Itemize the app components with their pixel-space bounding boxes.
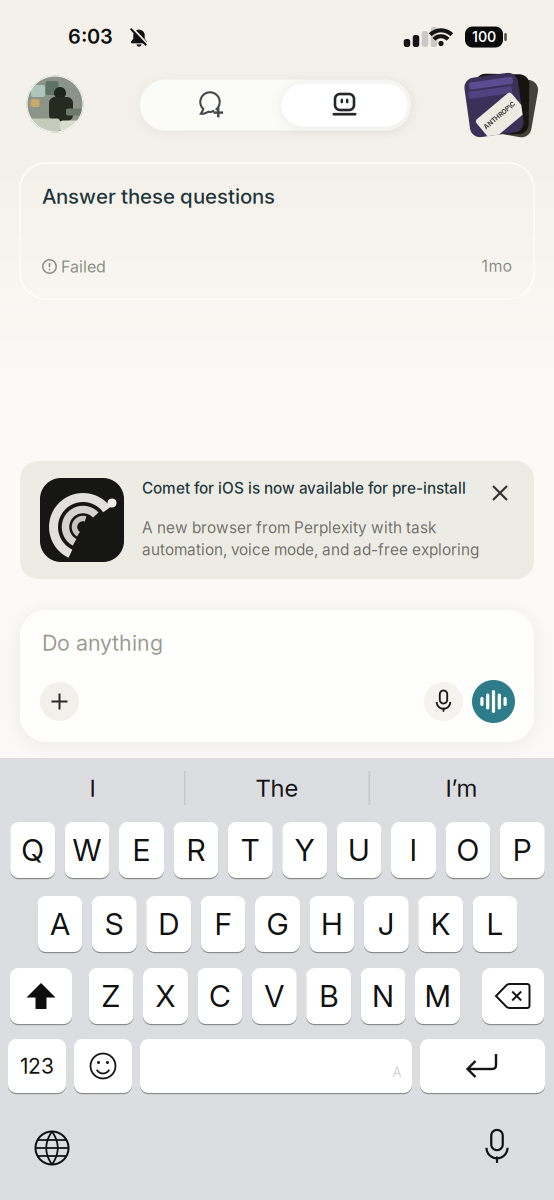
staticText: X xyxy=(155,978,175,1014)
button[interactable]: Answer these questions xyxy=(20,163,534,299)
staticText: O xyxy=(456,832,479,868)
staticText: S xyxy=(105,906,124,942)
button[interactable]: V xyxy=(252,968,297,1024)
staticText: W xyxy=(73,832,102,868)
staticText: F xyxy=(215,906,232,942)
button[interactable]: R xyxy=(173,822,218,878)
button[interactable]: I’m xyxy=(371,766,551,810)
staticText: The xyxy=(255,773,298,802)
staticText: 1mo xyxy=(481,256,512,276)
button[interactable]: T xyxy=(228,822,273,878)
staticText: I xyxy=(409,832,417,868)
button[interactable]: S xyxy=(92,896,137,952)
button[interactable]: D xyxy=(146,896,191,952)
button[interactable]: New thread xyxy=(143,79,278,130)
staticText: Q xyxy=(21,832,44,868)
staticText: L xyxy=(487,906,504,942)
staticText: Failed xyxy=(61,257,106,276)
staticText: D xyxy=(158,906,179,942)
button[interactable]: G xyxy=(255,896,300,952)
staticText: T xyxy=(241,832,260,868)
button[interactable]: K xyxy=(418,896,463,952)
button[interactable]: Profile xyxy=(26,75,83,132)
staticText: G xyxy=(266,906,288,942)
button[interactable]: Delete xyxy=(482,968,544,1024)
staticText: U xyxy=(348,832,370,868)
button[interactable]: Dismiss xyxy=(483,476,517,510)
button[interactable]: Shift xyxy=(10,968,72,1024)
button[interactable]: 123 xyxy=(8,1039,66,1093)
button[interactable]: E xyxy=(119,822,164,878)
staticText: H xyxy=(321,906,343,942)
button[interactable]: Emoji xyxy=(74,1039,132,1093)
staticText: R xyxy=(186,832,205,868)
button[interactable]: J xyxy=(364,896,409,952)
staticText: 123 xyxy=(20,1053,54,1079)
staticText: M xyxy=(424,978,450,1014)
staticText: P xyxy=(513,832,532,868)
staticText: Do anything xyxy=(42,630,163,656)
staticText: A xyxy=(392,1064,401,1080)
button[interactable]: M xyxy=(415,968,460,1024)
staticText: Z xyxy=(102,978,121,1014)
button[interactable]: The xyxy=(187,766,367,810)
button[interactable]: return xyxy=(420,1039,545,1093)
staticText: A new browser from Perplexity with task … xyxy=(142,518,479,559)
button[interactable]: space xyxy=(140,1039,412,1093)
button[interactable]: I xyxy=(2,766,182,810)
button[interactable]: U xyxy=(337,822,382,878)
staticText: I xyxy=(89,773,95,802)
staticText: 6:03 xyxy=(68,24,113,49)
button[interactable]: W xyxy=(65,822,110,878)
button[interactable]: Next keyboard xyxy=(24,1120,80,1176)
button[interactable]: I xyxy=(391,822,436,878)
button[interactable]: Attach xyxy=(40,682,79,721)
button[interactable]: X xyxy=(143,968,188,1024)
button[interactable]: B xyxy=(306,968,351,1024)
button[interactable]: Dictation xyxy=(475,1124,519,1170)
staticText: N xyxy=(372,978,394,1014)
button[interactable]: L xyxy=(473,896,518,952)
button[interactable]: Q xyxy=(10,822,55,878)
button[interactable]: A xyxy=(37,896,82,952)
button[interactable]: P xyxy=(500,822,545,878)
staticText: Answer these questions xyxy=(42,184,275,209)
staticText: 100 xyxy=(472,28,496,45)
button[interactable]: Assistant xyxy=(281,83,407,126)
staticText: Comet for iOS is now available for pre-i… xyxy=(142,479,466,497)
button[interactable]: O xyxy=(445,822,490,878)
staticText: V xyxy=(264,978,284,1014)
staticText: J xyxy=(378,906,395,942)
button[interactable]: C xyxy=(197,968,242,1024)
button[interactable]: Y xyxy=(282,822,327,878)
staticText: ANTHROP\C xyxy=(478,112,517,120)
button[interactable]: Dictate xyxy=(424,682,463,721)
staticText: A xyxy=(50,906,70,942)
staticText: Y xyxy=(295,832,315,868)
button[interactable]: Discover xyxy=(460,72,538,138)
staticText: B xyxy=(319,978,338,1014)
button[interactable]: F xyxy=(201,896,246,952)
staticText: K xyxy=(431,906,451,942)
button[interactable]: Voice mode xyxy=(472,680,515,723)
staticText: E xyxy=(132,832,150,868)
button[interactable]: H xyxy=(309,896,354,952)
button[interactable]: Z xyxy=(89,968,134,1024)
button[interactable]: N xyxy=(361,968,406,1024)
staticText: C xyxy=(209,978,231,1014)
staticText: I’m xyxy=(445,773,477,802)
